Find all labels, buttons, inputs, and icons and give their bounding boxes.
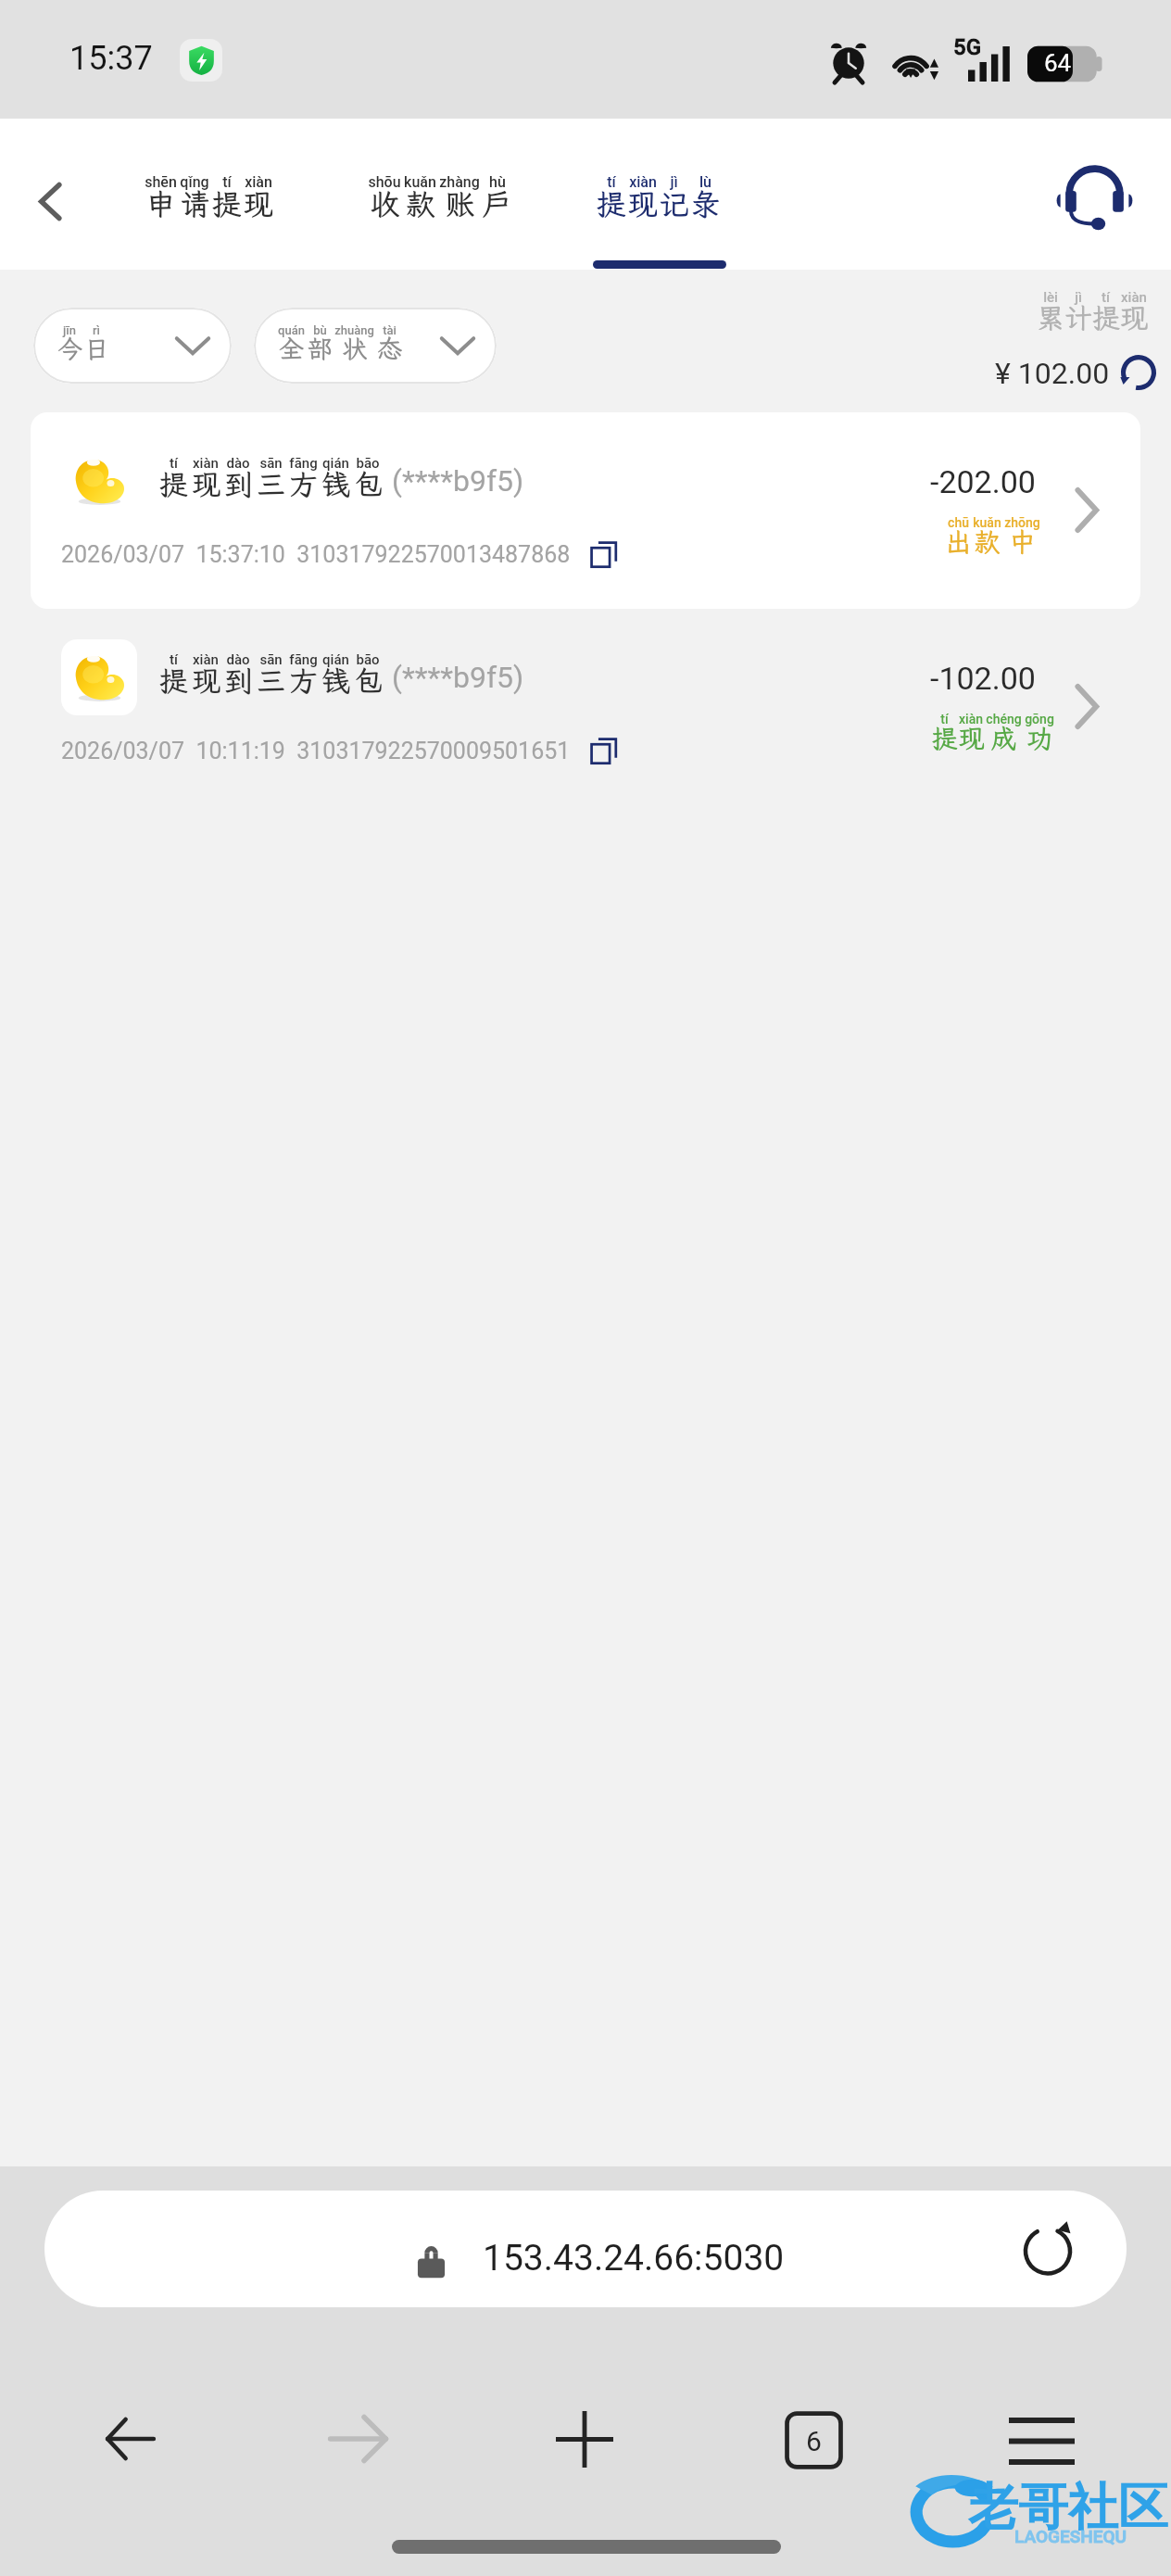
staticText: 提: [159, 465, 188, 503]
staticText: hù: [489, 173, 506, 191]
staticText: qián: [322, 651, 349, 668]
staticText: 中: [1009, 524, 1036, 559]
staticText: tí: [940, 712, 949, 726]
button[interactable]: Menu: [990, 2390, 1092, 2492]
staticText: 记: [659, 184, 689, 223]
staticText: zhàng: [439, 173, 480, 191]
staticText: 钱: [321, 662, 350, 700]
staticText: 计: [1064, 299, 1092, 336]
staticText: 录: [690, 184, 721, 223]
staticText: dào: [226, 455, 250, 472]
staticText: 现: [627, 184, 658, 223]
staticText: 提: [931, 721, 958, 755]
button[interactable]: jīn: [33, 308, 232, 384]
button[interactable]: Back: [17, 168, 83, 234]
staticText: xiàn: [245, 173, 272, 191]
button[interactable]: Copy order id: [584, 534, 624, 575]
staticText: 提: [159, 662, 188, 700]
staticText: 状: [342, 332, 367, 365]
staticText: 现: [192, 465, 220, 503]
staticText: 老哥社区: [968, 2476, 1168, 2539]
staticText: 成: [990, 721, 1017, 755]
staticText: 账: [445, 184, 475, 223]
staticText: quán: [278, 323, 305, 337]
button[interactable]: shēn: [144, 173, 274, 223]
staticText: 款: [405, 184, 435, 223]
button[interactable]: Refresh: [1114, 350, 1163, 398]
staticText: zhōng: [1004, 515, 1040, 530]
staticText: 功: [1026, 721, 1053, 755]
staticText: bāo: [356, 651, 380, 668]
staticText: 2026/03/07 10:11:19 31031792257000950165…: [61, 738, 571, 764]
staticText: 5G: [953, 34, 981, 60]
staticText: 64: [1044, 49, 1072, 77]
staticText: 请: [180, 184, 210, 223]
button[interactable]: Details: [1054, 674, 1119, 739]
staticText: 提: [596, 184, 626, 223]
staticText: 到: [224, 662, 253, 700]
button[interactable]: tí: [31, 609, 1140, 805]
staticText: 累: [1037, 299, 1064, 336]
staticText: jì: [670, 173, 678, 191]
staticText: ¥ 102.00: [995, 356, 1110, 391]
staticText: tí: [170, 455, 178, 472]
button[interactable]: Copy order id: [584, 730, 624, 771]
staticText: 包: [354, 662, 383, 700]
staticText: lù: [699, 173, 711, 191]
staticText: 出: [945, 524, 972, 559]
button[interactable]: Details: [1054, 477, 1119, 542]
staticText: 今: [57, 332, 82, 365]
staticText: tí: [170, 651, 178, 668]
staticText: sān: [259, 651, 283, 668]
button[interactable]: shōu: [367, 173, 513, 223]
staticText: 到: [224, 465, 253, 503]
staticText: 户: [482, 184, 512, 223]
staticText: tí: [607, 173, 616, 191]
staticText: 2026/03/07 15:37:10 31031792257001348786…: [61, 541, 571, 568]
staticText: 三: [257, 465, 285, 503]
staticText: fāng: [289, 651, 318, 668]
staticText: LAOGESHEQU: [1014, 2526, 1127, 2546]
staticText: xiàn: [193, 651, 219, 668]
button[interactable]: Reload: [1017, 2218, 1078, 2279]
staticText: -202.00: [930, 463, 1036, 500]
staticText: zhuàng: [334, 323, 374, 337]
staticText: chū: [948, 515, 969, 530]
staticText: shōu: [368, 173, 401, 191]
staticText: xiàn: [959, 712, 983, 726]
staticText: kuǎn: [404, 173, 436, 191]
staticText: lèi: [1043, 289, 1058, 306]
staticText: -102.00: [930, 660, 1036, 697]
button[interactable]: Forward: [307, 2388, 409, 2490]
staticText: 153.43.24.66:5030: [483, 2237, 785, 2279]
staticText: tí: [1102, 289, 1110, 306]
staticText: (****b9f5): [384, 660, 524, 695]
staticText: (****b9f5): [384, 463, 524, 499]
staticText: kuǎn: [973, 515, 1001, 530]
staticText: 日: [84, 332, 109, 365]
button[interactable]: 153.43.24.66:5030: [44, 2191, 1127, 2307]
button[interactable]: quán: [254, 308, 497, 384]
staticText: 提: [211, 184, 242, 223]
staticText: 现: [192, 662, 220, 700]
button[interactable]: Tabs: [762, 2389, 864, 2491]
staticText: rì: [93, 323, 100, 337]
staticText: 包: [354, 465, 383, 503]
staticText: tí: [222, 173, 232, 191]
staticText: 全: [279, 332, 304, 365]
staticText: qǐng: [180, 173, 209, 191]
staticText: 部: [308, 332, 333, 365]
button[interactable]: Back: [80, 2388, 182, 2490]
staticText: jīn: [63, 323, 76, 337]
staticText: 态: [377, 332, 402, 365]
staticText: 6: [806, 2425, 822, 2457]
button[interactable]: Customer service: [1054, 154, 1134, 234]
staticText: 款: [974, 524, 1001, 559]
staticText: 现: [243, 184, 273, 223]
button[interactable]: tí: [31, 412, 1140, 609]
staticText: 申: [145, 184, 176, 223]
button[interactable]: tí: [596, 173, 722, 223]
staticText: 15:37: [69, 39, 153, 78]
button[interactable]: New tab: [534, 2388, 636, 2490]
staticText: bāo: [356, 455, 380, 472]
